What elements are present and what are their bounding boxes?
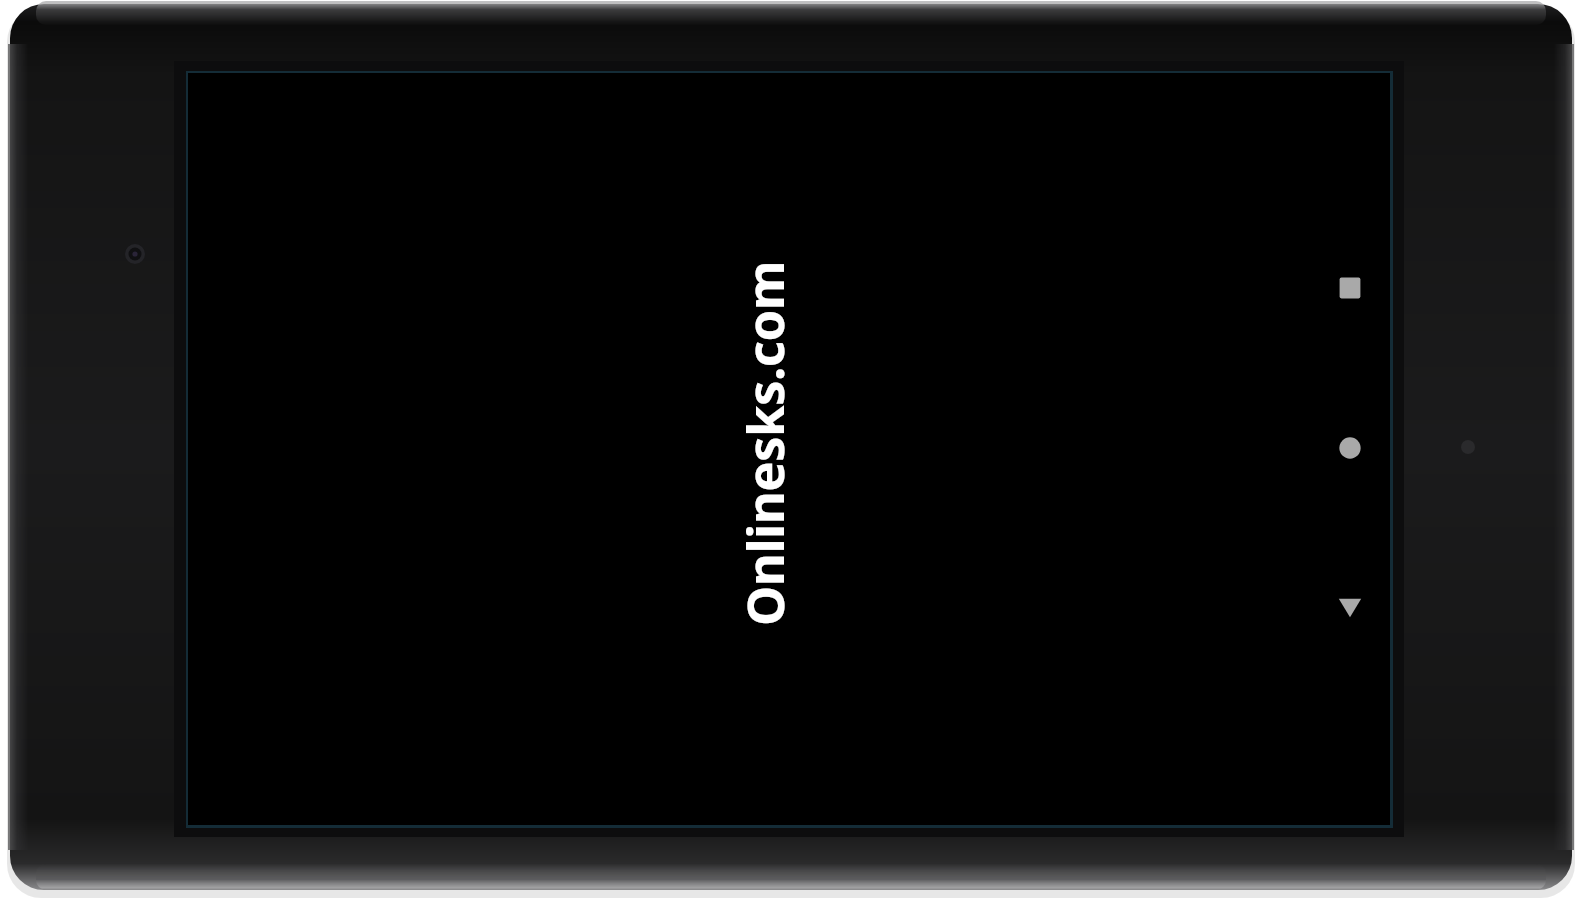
button[interactable]: Onlinesks.com bbox=[729, 261, 798, 626]
button[interactable]: Back bbox=[1324, 582, 1376, 634]
button[interactable]: Home bbox=[1324, 422, 1376, 474]
staticText: Onlinesks.com bbox=[729, 261, 798, 626]
button[interactable]: Recent apps bbox=[1324, 262, 1376, 314]
